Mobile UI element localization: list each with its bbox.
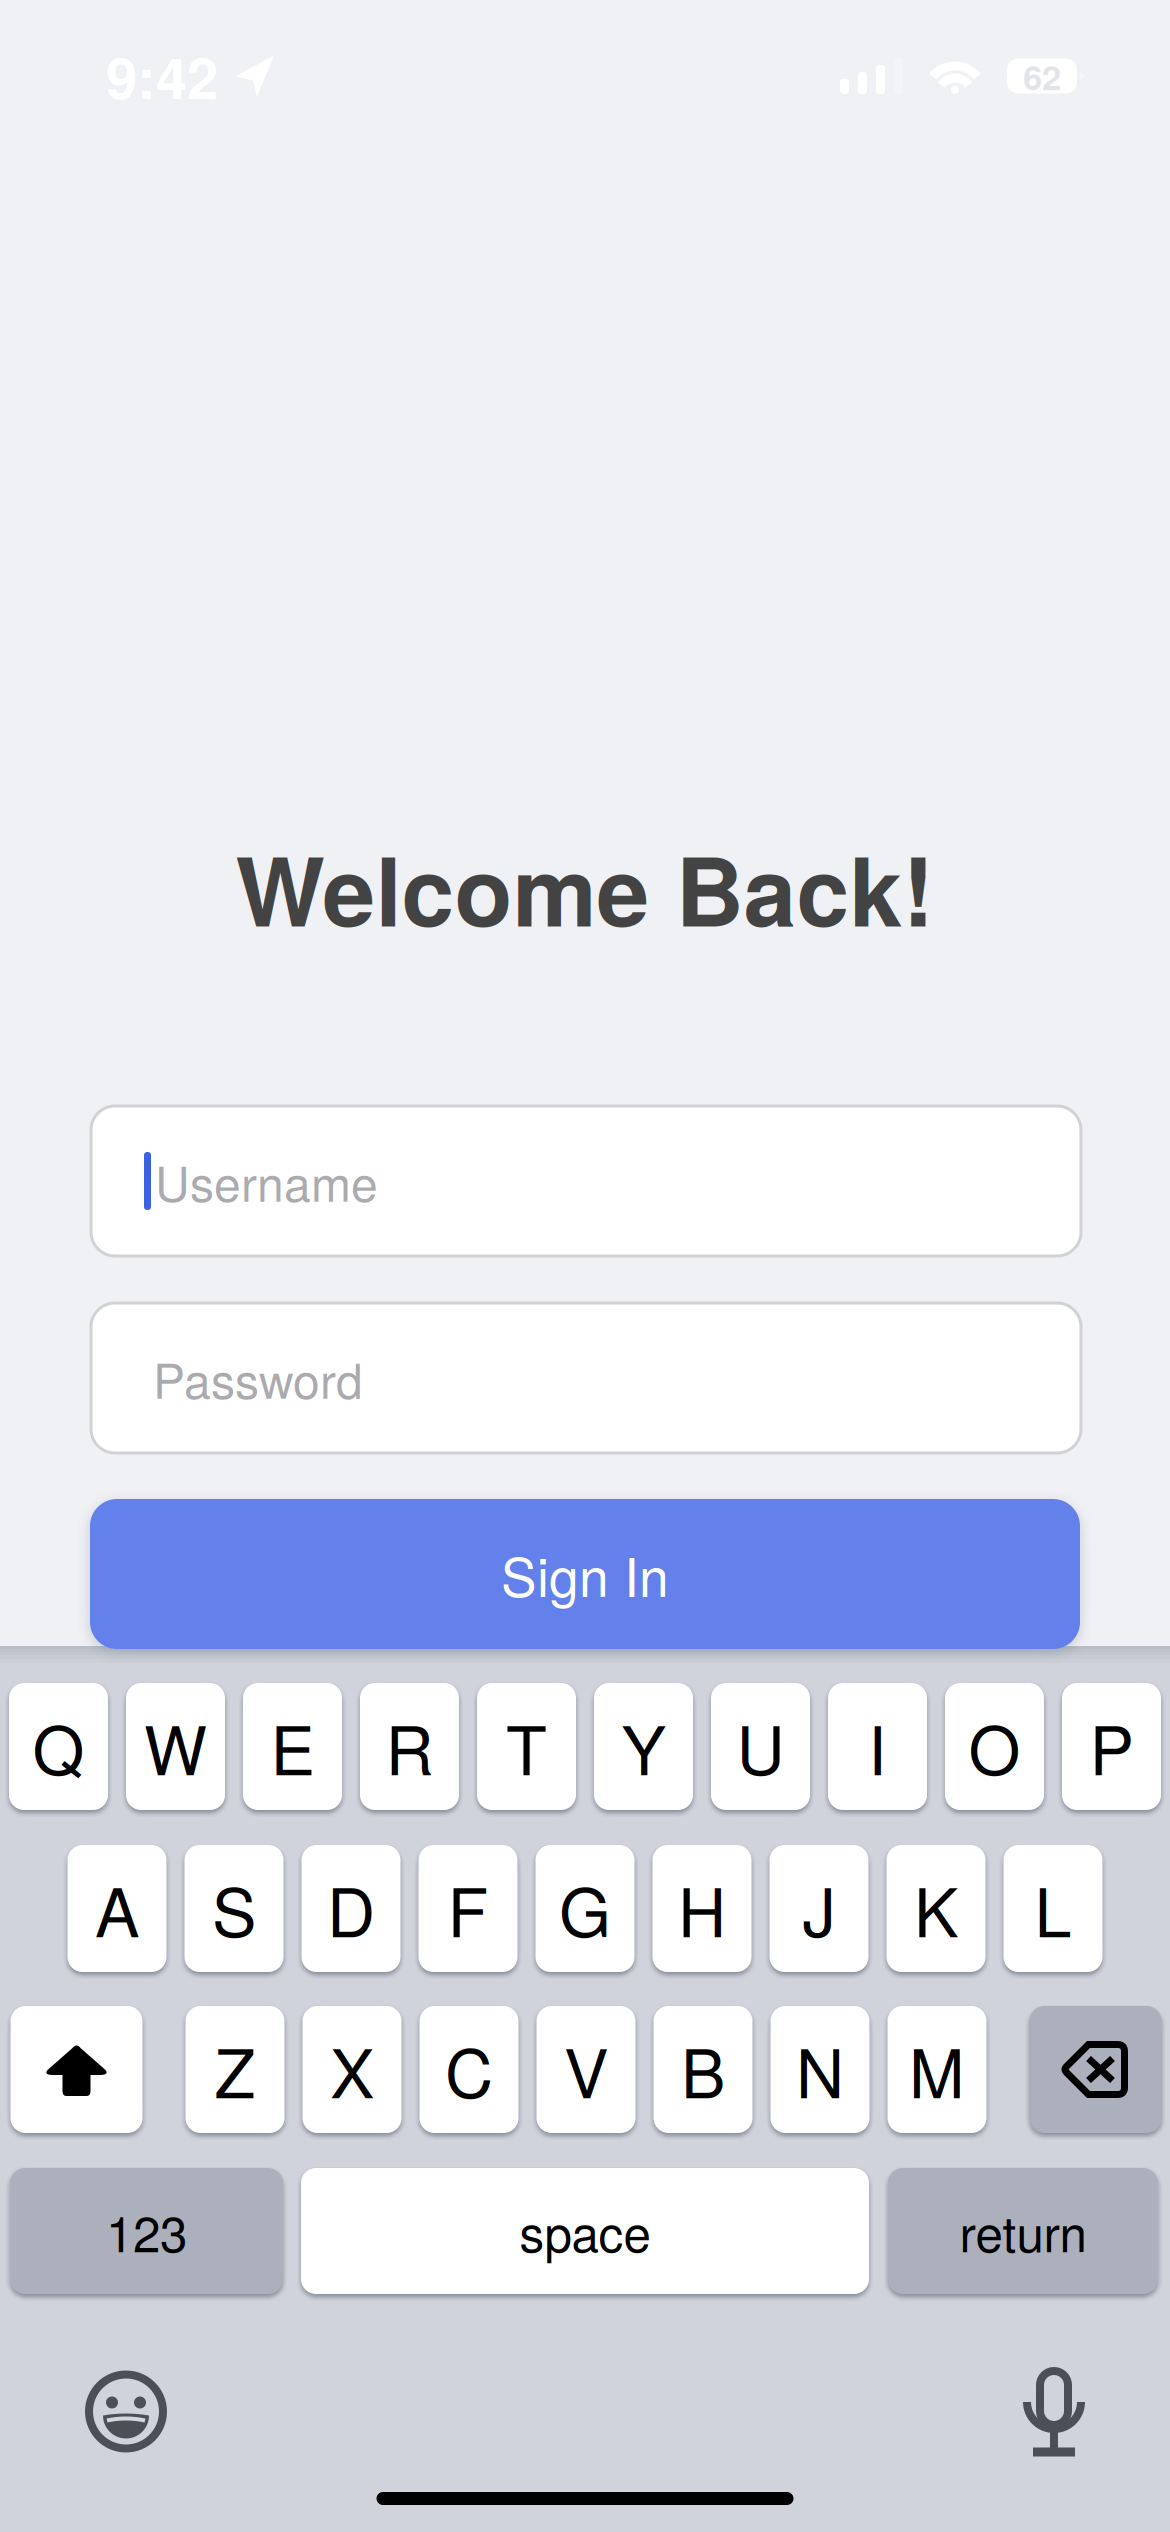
staticText: Password: [153, 1344, 363, 1412]
button[interactable]: B: [653, 2006, 752, 2133]
button[interactable]: N: [770, 2006, 869, 2133]
staticText: R: [385, 1699, 433, 1794]
button[interactable]: H: [652, 1845, 751, 1972]
button[interactable]: G: [535, 1845, 634, 1972]
staticText: 9:42: [106, 36, 218, 116]
staticText: T: [506, 1699, 547, 1794]
staticText: 62: [1023, 51, 1061, 101]
staticText: Q: [32, 1699, 84, 1794]
staticText: K: [914, 1861, 958, 1956]
staticText: Y: [621, 1699, 665, 1794]
staticText: J: [802, 1861, 835, 1956]
button[interactable]: U: [711, 1683, 810, 1810]
staticText: C: [445, 2022, 493, 2117]
button[interactable]: O: [945, 1683, 1044, 1810]
staticText: 123: [106, 2196, 187, 2266]
button[interactable]: W: [126, 1683, 225, 1810]
button[interactable]: Z: [185, 2006, 284, 2133]
button[interactable]: D: [301, 1845, 400, 1972]
staticText: N: [796, 2022, 844, 2117]
button[interactable]: M: [887, 2006, 986, 2133]
staticText: S: [212, 1861, 256, 1956]
button[interactable]: Emoji keyboard: [85, 2370, 167, 2452]
staticText: Sign In: [501, 1536, 669, 1612]
staticText: Z: [214, 2022, 255, 2117]
staticText: I: [868, 1699, 887, 1794]
staticText: W: [144, 1699, 207, 1794]
staticText: D: [327, 1861, 375, 1956]
button[interactable]: Delete: [1029, 2006, 1161, 2133]
button[interactable]: Shift: [10, 2006, 142, 2133]
staticText: H: [678, 1861, 726, 1956]
button[interactable]: E: [243, 1683, 342, 1810]
staticText: F: [447, 1861, 488, 1956]
button[interactable]: J: [769, 1845, 868, 1972]
staticText: G: [559, 1861, 611, 1956]
button[interactable]: A: [67, 1845, 166, 1972]
staticText: U: [736, 1699, 784, 1794]
button[interactable]: Password: [91, 1303, 1081, 1453]
button[interactable]: R: [360, 1683, 459, 1810]
button[interactable]: Q: [9, 1683, 108, 1810]
button[interactable]: X: [302, 2006, 401, 2133]
button[interactable]: P: [1062, 1683, 1161, 1810]
button[interactable]: T: [477, 1683, 576, 1810]
button[interactable]: Username: [91, 1106, 1081, 1256]
staticText: X: [330, 2022, 374, 2117]
staticText: L: [1034, 1861, 1071, 1956]
button[interactable]: S: [184, 1845, 283, 1972]
button[interactable]: 123: [10, 2168, 283, 2294]
staticText: space: [519, 2196, 650, 2266]
button[interactable]: C: [419, 2006, 518, 2133]
staticText: O: [968, 1699, 1020, 1794]
staticText: A: [95, 1861, 139, 1956]
button[interactable]: V: [536, 2006, 635, 2133]
staticText: P: [1089, 1699, 1133, 1794]
button[interactable]: space: [301, 2168, 869, 2294]
button[interactable]: L: [1003, 1845, 1102, 1972]
button[interactable]: Y: [594, 1683, 693, 1810]
button[interactable]: return: [888, 2168, 1158, 2294]
button[interactable]: I: [828, 1683, 927, 1810]
staticText: Username: [155, 1147, 378, 1215]
staticText: Welcome Back!: [235, 820, 934, 956]
button[interactable]: F: [418, 1845, 517, 1972]
staticText: E: [270, 1699, 314, 1794]
button[interactable]: Dictation: [1024, 2364, 1084, 2459]
staticText: B: [681, 2022, 725, 2117]
staticText: return: [959, 2196, 1086, 2266]
staticText: M: [909, 2022, 965, 2117]
button[interactable]: K: [886, 1845, 985, 1972]
button[interactable]: Sign In: [90, 1499, 1080, 1649]
staticText: V: [564, 2022, 608, 2117]
